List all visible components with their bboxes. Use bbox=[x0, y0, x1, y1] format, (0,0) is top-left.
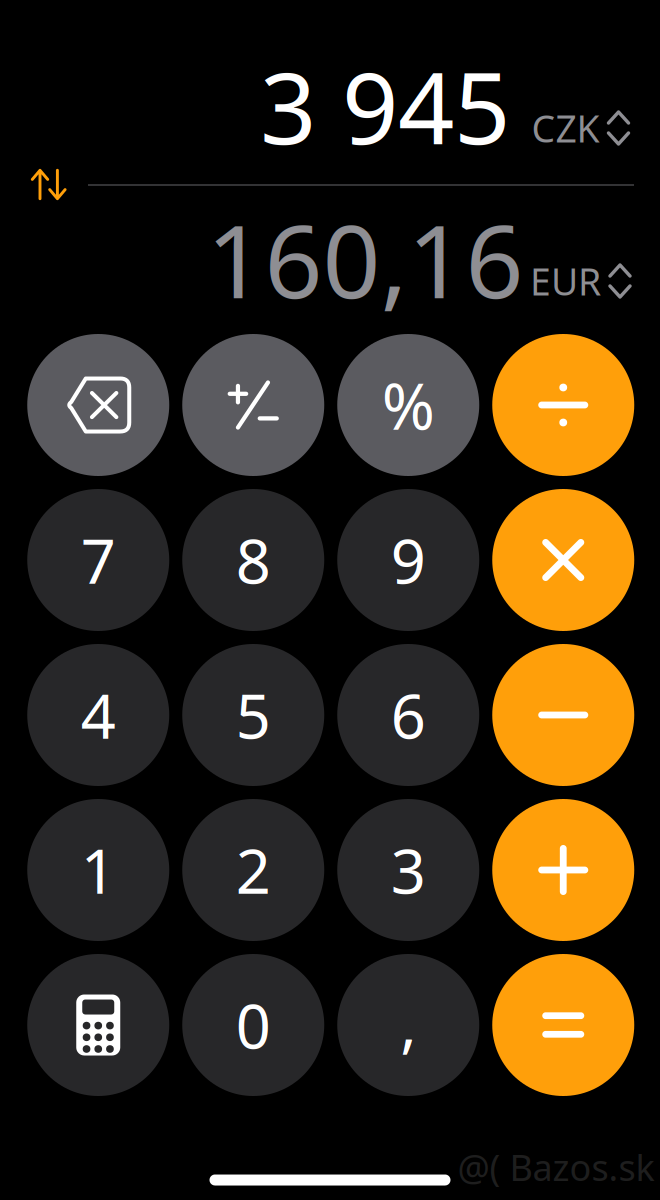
staticText: 8 bbox=[236, 519, 271, 601]
button[interactable]: 6 bbox=[337, 644, 479, 786]
staticText: 3 bbox=[391, 829, 426, 911]
button[interactable]: 3 bbox=[337, 799, 479, 941]
button[interactable]: Toggle sign bbox=[182, 334, 324, 476]
staticText: CZK bbox=[531, 103, 599, 153]
button[interactable]: 0 bbox=[182, 954, 324, 1096]
button[interactable]: 1 bbox=[27, 799, 169, 941]
button[interactable]: 5 bbox=[182, 644, 324, 786]
staticText: 1 bbox=[81, 829, 116, 911]
staticText: 4 bbox=[81, 674, 116, 756]
button[interactable]: Multiply bbox=[492, 489, 634, 631]
button[interactable]: Target currency EUR bbox=[530, 248, 632, 314]
button[interactable]: 8 bbox=[182, 489, 324, 631]
button[interactable]: 2 bbox=[182, 799, 324, 941]
staticText: 7 bbox=[81, 519, 116, 601]
button[interactable]: Add bbox=[492, 799, 634, 941]
button[interactable]: Delete bbox=[27, 334, 169, 476]
staticText: 0 bbox=[236, 984, 271, 1066]
button[interactable]: Equals bbox=[492, 954, 634, 1096]
staticText: 2 bbox=[236, 829, 271, 911]
button[interactable]: 4 bbox=[27, 644, 169, 786]
staticText: EUR bbox=[530, 256, 601, 306]
staticText: 5 bbox=[236, 674, 271, 756]
staticText: @( Bazos.sk bbox=[457, 1143, 654, 1191]
staticText: 9 bbox=[391, 519, 426, 601]
button[interactable]: Subtract bbox=[492, 644, 634, 786]
button[interactable]: Calculator bbox=[27, 954, 169, 1096]
staticText: 160,16 bbox=[206, 192, 523, 326]
button[interactable]: Percent bbox=[337, 334, 479, 476]
button[interactable]: Decimal separator bbox=[337, 954, 479, 1096]
button[interactable]: Source currency CZK bbox=[531, 95, 630, 161]
button[interactable]: Swap currencies bbox=[21, 159, 77, 210]
staticText: , bbox=[400, 982, 416, 1064]
staticText: 6 bbox=[391, 674, 426, 756]
staticText: 3 945 bbox=[260, 40, 510, 171]
staticText: % bbox=[382, 362, 435, 447]
button[interactable]: 7 bbox=[27, 489, 169, 631]
button[interactable]: 9 bbox=[337, 489, 479, 631]
button[interactable]: Divide bbox=[492, 334, 634, 476]
